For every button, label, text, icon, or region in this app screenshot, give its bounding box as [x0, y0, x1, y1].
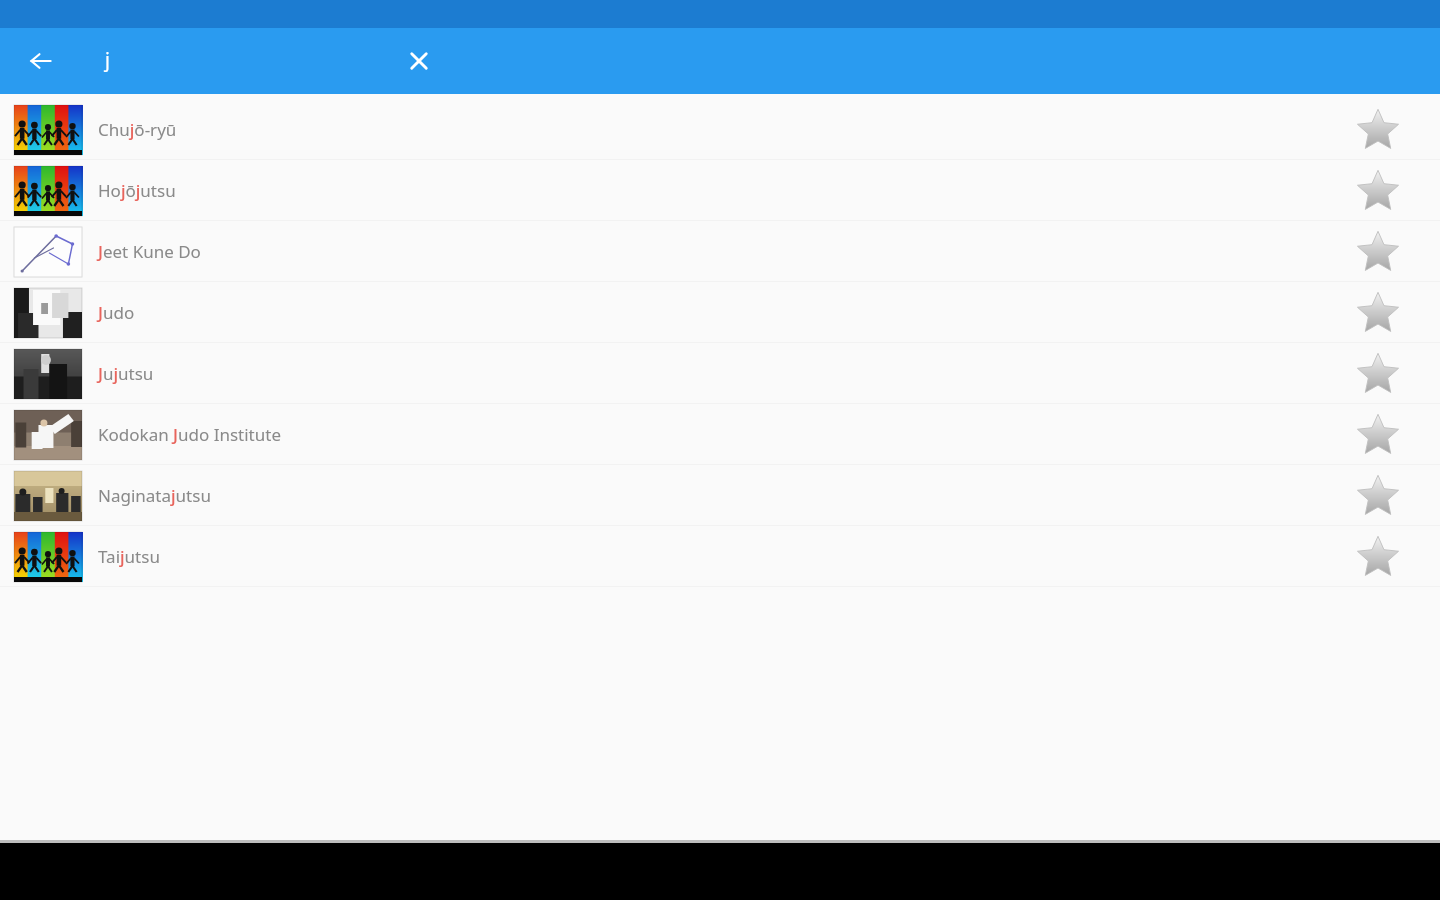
staticText: Naginatajutsu	[98, 484, 211, 507]
button[interactable]: Favorite	[1352, 470, 1404, 522]
button[interactable]: Naginatajutsu	[0, 465, 1440, 526]
button[interactable]: Favorite	[1352, 226, 1404, 278]
button[interactable]: Favorite	[1352, 165, 1404, 217]
button[interactable]: Jeet Kune Do	[0, 221, 1440, 282]
button[interactable]: Kodokan Judo Institute	[0, 404, 1440, 465]
staticText: Jeet Kune Do	[98, 240, 201, 263]
staticText: j	[105, 47, 110, 73]
button[interactable]: Favorite	[1352, 287, 1404, 339]
button[interactable]: Favorite	[1352, 531, 1404, 583]
button[interactable]: Clear search	[396, 38, 442, 84]
button[interactable]: Hojōjutsu	[0, 160, 1440, 221]
button[interactable]: Jujutsu	[0, 343, 1440, 404]
button[interactable]: Back	[18, 38, 64, 84]
staticText: Hojōjutsu	[98, 179, 176, 202]
button[interactable]: Favorite	[1352, 348, 1404, 400]
staticText: Taijutsu	[98, 545, 160, 568]
button[interactable]: Favorite	[1352, 409, 1404, 461]
staticText: Judo	[98, 301, 135, 324]
button[interactable]: Favorite	[1352, 104, 1404, 156]
button[interactable]: Taijutsu	[0, 526, 1440, 587]
staticText: Chujō-ryū	[98, 118, 177, 141]
staticText: Kodokan Judo Institute	[98, 423, 281, 446]
button[interactable]: Chujō-ryū	[0, 99, 1440, 160]
staticText: Jujutsu	[98, 362, 154, 385]
button[interactable]: Judo	[0, 282, 1440, 343]
